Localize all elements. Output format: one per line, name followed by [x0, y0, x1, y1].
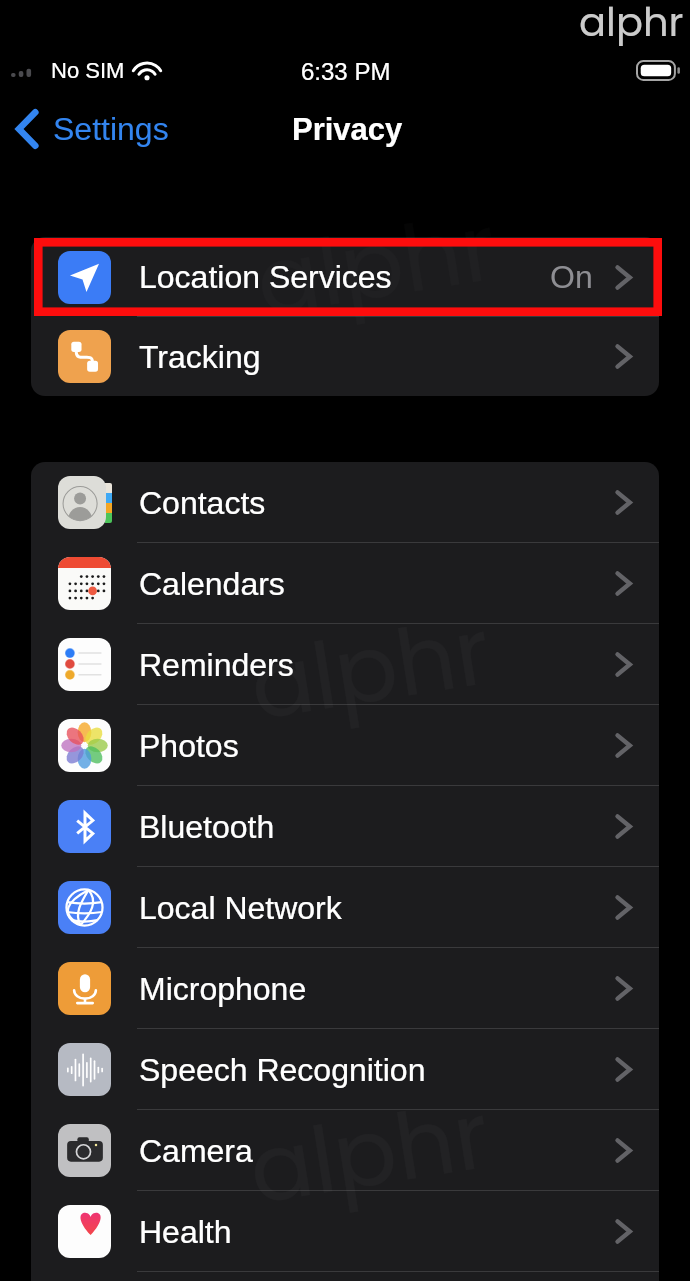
- button[interactable]: Photos: [31, 705, 659, 786]
- staticText: Privacy: [292, 112, 403, 147]
- staticText: Speech Recognition: [139, 1052, 426, 1088]
- staticText: Microphone: [139, 971, 307, 1007]
- staticText: Settings: [53, 111, 169, 147]
- button[interactable]: Back to Settings: [6, 104, 179, 154]
- button[interactable]: Microphone: [31, 948, 659, 1029]
- staticText: alphr: [240, 1070, 499, 1235]
- button[interactable]: Tracking: [31, 317, 659, 396]
- staticText: Local Network: [139, 890, 342, 926]
- staticText: alphr: [247, 182, 506, 347]
- button[interactable]: Local Network: [31, 867, 659, 948]
- staticText: Tracking: [139, 339, 261, 375]
- staticText: Camera: [139, 1133, 253, 1169]
- button[interactable]: Contacts: [31, 462, 659, 543]
- button[interactable]: Calendars: [31, 543, 659, 624]
- staticText: alphr: [241, 586, 500, 751]
- staticText: Calendars: [139, 566, 285, 602]
- staticText: Bluetooth: [139, 809, 275, 845]
- staticText: No SIM: [51, 58, 125, 83]
- button[interactable]: Speech Recognition: [31, 1029, 659, 1110]
- staticText: 6:33 PM: [301, 58, 391, 85]
- staticText: Contacts: [139, 485, 266, 521]
- button[interactable]: Bluetooth: [31, 786, 659, 867]
- staticText: Location Services: [139, 259, 392, 295]
- staticText: Reminders: [139, 647, 294, 683]
- button[interactable]: Camera: [31, 1110, 659, 1191]
- staticText: On: [550, 259, 593, 295]
- staticText: alphr: [579, 0, 684, 50]
- button[interactable]: Reminders: [31, 624, 659, 705]
- button[interactable]: Location Services: [31, 237, 659, 317]
- staticText: Health: [139, 1214, 232, 1250]
- button[interactable]: Health: [31, 1191, 659, 1272]
- staticText: Photos: [139, 728, 239, 764]
